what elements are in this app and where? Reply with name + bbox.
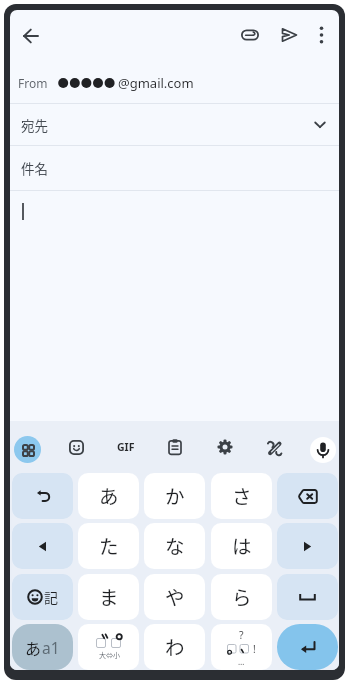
staticText: 大⇔小 [99,650,120,660]
button[interactable]: は [211,523,272,569]
button[interactable]: ら [211,574,272,620]
button[interactable]: か [144,473,205,519]
staticText: わ [165,632,185,660]
button[interactable] [14,436,41,463]
staticText: あ [25,636,42,659]
staticText: From [18,75,48,91]
staticText: ? [239,628,244,642]
button[interactable]: な [144,523,205,569]
button[interactable]: ま [78,574,139,620]
staticText: 宛先 [21,115,48,135]
button[interactable] [12,523,73,569]
button[interactable] [163,435,187,459]
staticText: ら [232,582,252,610]
button[interactable] [213,435,237,459]
button[interactable] [277,23,301,47]
staticText: か [165,481,185,509]
button[interactable] [64,435,88,459]
button[interactable] [277,523,338,569]
staticText: GIF [117,440,135,454]
button[interactable] [277,574,338,620]
button[interactable]: GIF [114,435,138,459]
button[interactable] [262,435,286,459]
staticText: a1 [42,637,60,658]
staticText: さ [232,481,252,509]
staticText: や [165,582,185,610]
button[interactable] [277,473,338,519]
button[interactable]: 大⇔小 [78,624,139,670]
button[interactable]: わ [144,624,205,670]
button[interactable] [310,437,336,463]
button[interactable]: さ [211,473,272,519]
staticText: あ [99,481,119,509]
button[interactable]: 件名 [10,146,339,190]
button[interactable]: た [78,523,139,569]
button[interactable]: From [10,63,339,103]
button[interactable] [309,23,333,47]
staticText: 記 [44,587,58,607]
button[interactable]: あ [12,624,73,670]
button[interactable] [238,23,262,47]
staticText: 件名 [21,158,48,178]
button[interactable]: ? [211,624,272,670]
button[interactable]: や [144,574,205,620]
button[interactable] [12,473,73,519]
staticText: は [232,531,252,559]
button[interactable] [10,191,339,421]
button[interactable] [19,24,43,48]
staticText: た [99,531,119,559]
button[interactable] [277,624,338,670]
staticText: ま [99,582,119,610]
staticText: @gmail.com [118,74,194,92]
staticText: … [238,656,245,667]
button[interactable]: 記 [12,574,73,620]
button[interactable]: あ [78,473,139,519]
staticText: な [165,531,185,559]
button[interactable]: 宛先 [10,104,339,145]
staticText: ! [253,642,256,656]
